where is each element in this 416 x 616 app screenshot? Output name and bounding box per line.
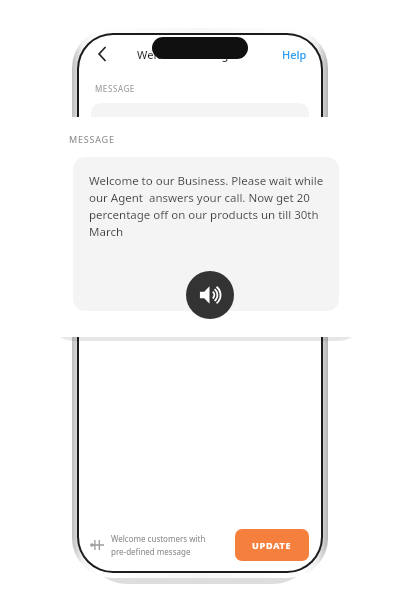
staticText: UPDATE bbox=[252, 539, 292, 551]
button[interactable]: Play message audio bbox=[186, 271, 234, 319]
other: Message template bbox=[91, 540, 104, 550]
staticText: MESSAGE bbox=[95, 83, 135, 94]
staticText: Help bbox=[282, 47, 307, 62]
staticText: MESSAGE bbox=[69, 133, 115, 145]
staticText: Welcome customers with bbox=[111, 533, 206, 544]
button[interactable]: Welcome to our Business. Please wait whi… bbox=[73, 157, 339, 311]
staticText: pre-defined message bbox=[111, 546, 191, 557]
button[interactable]: Help bbox=[280, 43, 309, 66]
staticText: Welcome to our Business. Please wait whi… bbox=[89, 173, 325, 240]
staticText: Welcome Message bbox=[137, 47, 235, 62]
button[interactable]: Back bbox=[91, 42, 115, 66]
button[interactable]: UPDATE bbox=[235, 529, 309, 561]
